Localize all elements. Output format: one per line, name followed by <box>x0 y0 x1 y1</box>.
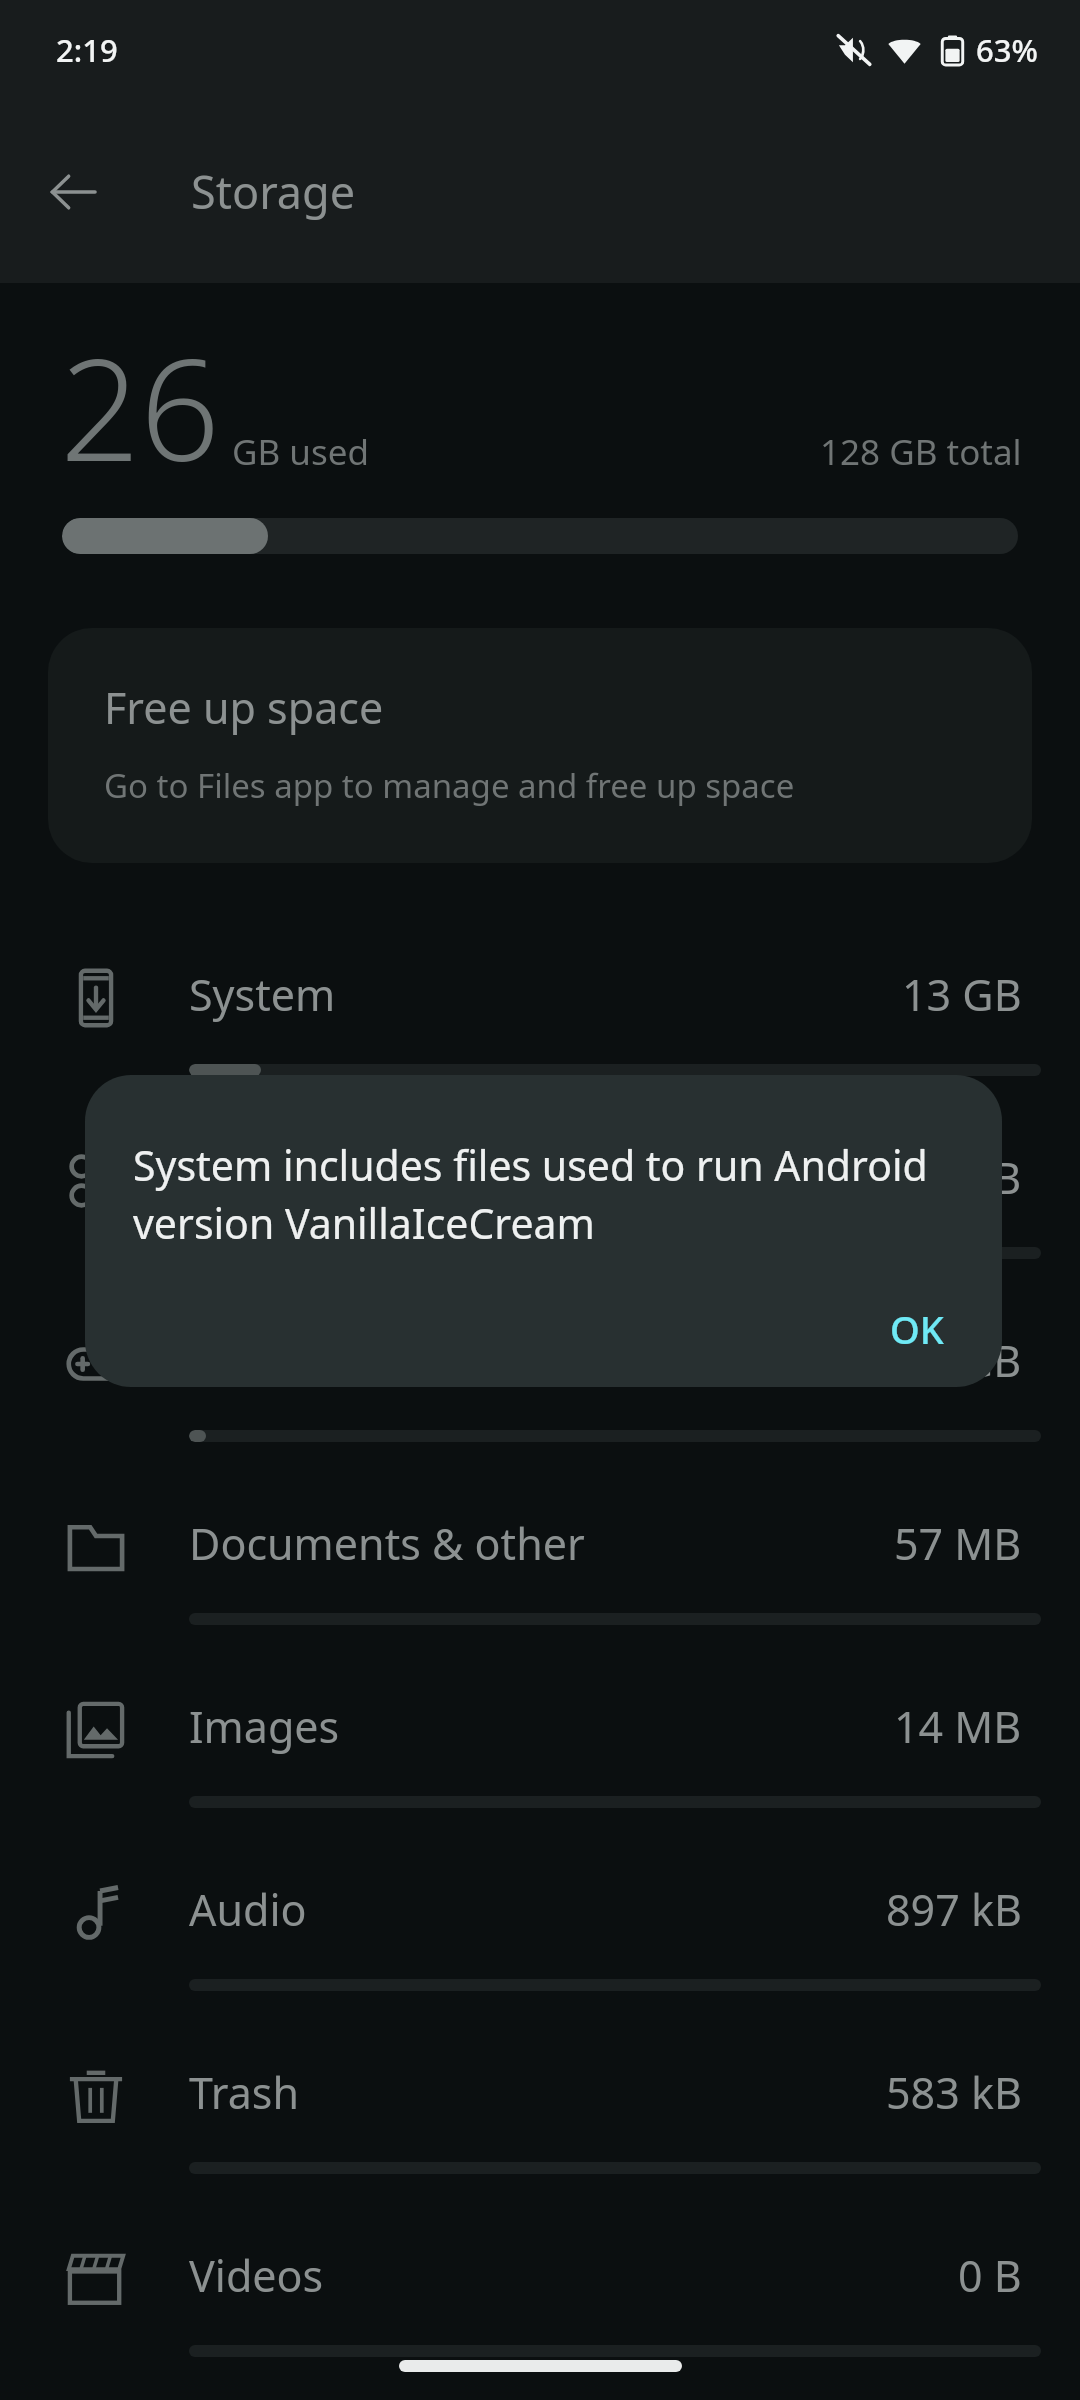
staticText: Go to Files app to manage and free up sp… <box>104 763 795 808</box>
staticText: Documents & other <box>189 1514 585 1573</box>
button[interactable]: Apps <box>0 1102 1080 1285</box>
staticText: OK <box>890 1303 944 1355</box>
staticText: 0 B <box>958 2246 1022 2305</box>
staticText: Storage <box>191 161 356 222</box>
staticText: 3.1 GB <box>890 1331 1022 1390</box>
staticText: 13 GB <box>902 965 1022 1024</box>
staticText: System <box>189 965 336 1024</box>
staticText: Videos <box>189 2246 324 2305</box>
staticText: Free up space <box>104 678 384 737</box>
staticText: 897 kB <box>886 1880 1022 1939</box>
staticText: 26 <box>60 311 220 502</box>
button[interactable]: Images <box>0 1651 1080 1834</box>
button[interactable]: OK <box>856 1285 978 1373</box>
staticText: Apps <box>189 1148 290 1207</box>
staticText: Games <box>189 1331 330 1390</box>
staticText: 583 kB <box>886 2063 1022 2122</box>
staticText: 128 GB total <box>820 428 1022 476</box>
staticText: GB used <box>232 428 369 476</box>
button[interactable]: Back <box>25 144 121 240</box>
button[interactable]: Documents & other <box>0 1468 1080 1651</box>
staticText: 63% <box>976 29 1038 71</box>
staticText: Audio <box>189 1880 307 1939</box>
staticText: 2:19 <box>56 29 118 71</box>
button[interactable]: System <box>0 919 1080 1102</box>
staticText: 14 MB <box>894 1697 1022 1756</box>
button[interactable]: Audio <box>0 1834 1080 2017</box>
staticText: Trash <box>189 2063 299 2122</box>
staticText: System includes files used to run Androi… <box>133 1137 962 1251</box>
staticText: 57 MB <box>894 1514 1022 1573</box>
button[interactable]: Trash <box>0 2017 1080 2200</box>
button[interactable]: Games <box>0 1285 1080 1468</box>
button[interactable]: Videos <box>0 2200 1080 2383</box>
staticText: Images <box>189 1697 340 1756</box>
staticText: 8.4 GB <box>890 1148 1022 1207</box>
button[interactable]: Free up space <box>48 628 1032 863</box>
